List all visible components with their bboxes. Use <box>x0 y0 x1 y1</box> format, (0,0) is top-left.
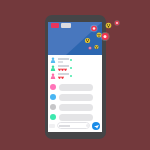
button[interactable] <box>48 64 102 72</box>
button[interactable] <box>51 23 71 28</box>
button[interactable] <box>48 82 102 92</box>
button[interactable] <box>48 92 102 102</box>
button[interactable] <box>48 112 102 122</box>
button[interactable] <box>57 122 90 129</box>
button[interactable] <box>48 102 102 112</box>
button[interactable] <box>48 72 102 80</box>
button[interactable]: Send <box>92 122 100 130</box>
button[interactable] <box>48 56 102 64</box>
